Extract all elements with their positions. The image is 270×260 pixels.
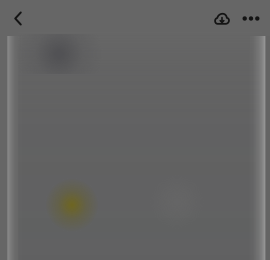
button[interactable]: Download (207, 0, 237, 36)
button[interactable]: Back (3, 0, 33, 36)
button[interactable]: More (237, 0, 265, 36)
